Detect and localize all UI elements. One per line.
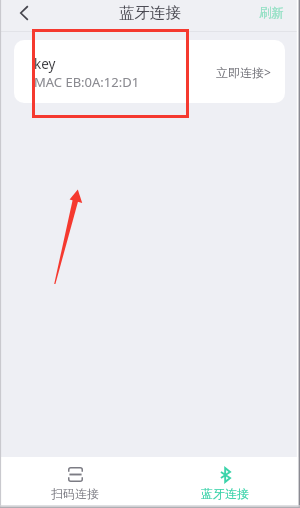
- button[interactable]: 蓝牙连接: [150, 457, 300, 508]
- staticText: key: [34, 55, 56, 73]
- staticText: 扫码连接: [51, 486, 99, 501]
- staticText: 蓝牙连接: [119, 3, 181, 23]
- staticText: MAC EB:0A:12:D1: [34, 73, 140, 91]
- staticText: 蓝牙连接: [201, 486, 249, 501]
- staticText: 立即连接>: [216, 64, 271, 80]
- button[interactable]: key: [14, 40, 285, 103]
- button[interactable]: 扫码连接: [0, 457, 150, 508]
- button[interactable]: 刷新: [249, 0, 300, 26]
- staticText: 刷新: [259, 5, 284, 21]
- button[interactable]: Back: [6, 0, 41, 26]
